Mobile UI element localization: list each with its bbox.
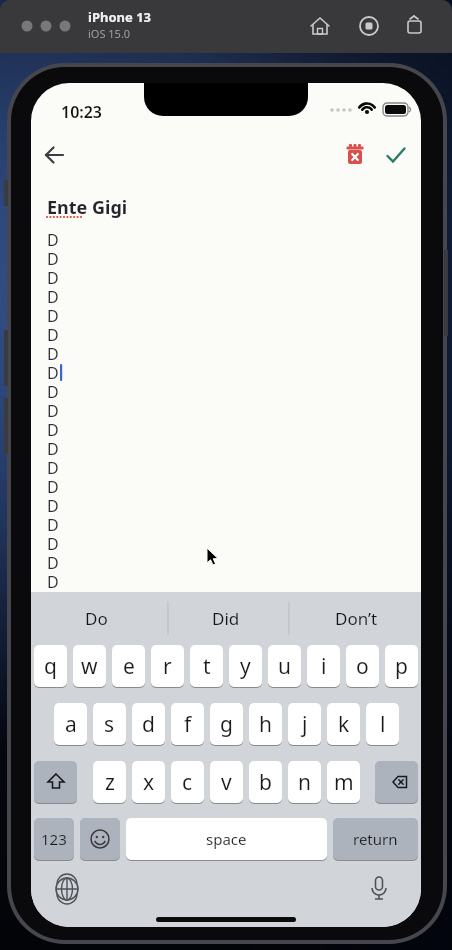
- staticText: j: [302, 710, 308, 739]
- staticText: d: [142, 710, 155, 739]
- button[interactable]: space: [126, 818, 327, 860]
- staticText: y: [240, 652, 251, 681]
- staticText: D: [47, 362, 59, 381]
- button[interactable]: y: [229, 645, 262, 687]
- staticText: D: [47, 438, 59, 457]
- button[interactable]: c: [171, 761, 204, 803]
- staticText: D: [47, 324, 59, 343]
- button[interactable]: h: [249, 703, 282, 745]
- staticText: D: [47, 476, 59, 495]
- staticText: u: [278, 652, 291, 681]
- button[interactable]: a: [54, 703, 87, 745]
- button[interactable]: [384, 143, 408, 167]
- staticText: v: [221, 768, 232, 797]
- staticText: q: [44, 652, 57, 681]
- staticText: z: [105, 768, 115, 797]
- staticText: D: [47, 571, 59, 590]
- staticText: D: [47, 267, 59, 286]
- staticText: g: [220, 710, 233, 739]
- staticText: e: [123, 652, 135, 681]
- button[interactable]: p: [385, 645, 418, 687]
- button[interactable]: m: [327, 761, 360, 803]
- staticText: 10:23: [61, 101, 103, 123]
- button[interactable]: q: [34, 645, 67, 687]
- staticText: r: [163, 652, 172, 681]
- staticText: m: [334, 768, 354, 797]
- staticText: D: [47, 552, 59, 571]
- staticText: a: [65, 710, 77, 739]
- button[interactable]: z: [93, 761, 126, 803]
- button[interactable]: return: [333, 818, 418, 860]
- staticText: n: [298, 768, 311, 797]
- staticText: Ente Gigi: [47, 195, 128, 220]
- staticText: h: [259, 710, 272, 739]
- staticText: Do: [85, 607, 108, 630]
- button[interactable]: v: [210, 761, 243, 803]
- staticText: D: [47, 229, 59, 248]
- button[interactable]: [43, 143, 67, 167]
- staticText: iPhone 13: [88, 8, 151, 26]
- staticText: D: [47, 457, 59, 476]
- staticText: i: [321, 652, 327, 681]
- staticText: Did: [212, 607, 240, 630]
- staticText: D: [47, 286, 59, 305]
- button[interactable]: s: [93, 703, 126, 745]
- button[interactable]: [80, 818, 120, 860]
- staticText: s: [104, 710, 115, 739]
- staticText: x: [143, 768, 155, 797]
- button[interactable]: d: [132, 703, 165, 745]
- staticText: o: [356, 652, 369, 681]
- button[interactable]: [344, 143, 366, 167]
- button[interactable]: u: [268, 645, 301, 687]
- button[interactable]: [34, 761, 77, 803]
- staticText: D: [47, 248, 59, 267]
- staticText: D: [47, 305, 59, 324]
- staticText: D: [47, 400, 59, 419]
- staticText: iOS 15.0: [88, 26, 131, 41]
- staticText: D: [47, 419, 59, 438]
- button[interactable]: k: [327, 703, 360, 745]
- staticText: D: [47, 343, 59, 362]
- button[interactable]: n: [288, 761, 321, 803]
- staticText: D: [47, 381, 59, 400]
- staticText: p: [395, 652, 408, 681]
- staticText: return: [353, 829, 398, 849]
- button[interactable]: j: [288, 703, 321, 745]
- button[interactable]: [375, 761, 418, 803]
- button[interactable]: i: [307, 645, 340, 687]
- staticText: b: [259, 768, 272, 797]
- button[interactable]: 123: [34, 818, 74, 860]
- staticText: Don’t: [335, 607, 378, 630]
- button[interactable]: r: [151, 645, 184, 687]
- button[interactable]: g: [210, 703, 243, 745]
- button[interactable]: Don’t: [291, 592, 421, 644]
- button[interactable]: t: [190, 645, 223, 687]
- button[interactable]: b: [249, 761, 282, 803]
- button[interactable]: Do: [31, 592, 161, 644]
- staticText: D: [47, 514, 59, 533]
- staticText: t: [203, 652, 211, 681]
- button[interactable]: e: [112, 645, 145, 687]
- staticText: D: [47, 495, 59, 514]
- button[interactable]: o: [346, 645, 379, 687]
- button[interactable]: x: [132, 761, 165, 803]
- staticText: k: [338, 710, 350, 739]
- button[interactable]: w: [73, 645, 106, 687]
- button[interactable]: l: [366, 703, 399, 745]
- staticText: w: [81, 652, 98, 681]
- button[interactable]: f: [171, 703, 204, 745]
- staticText: space: [206, 829, 247, 849]
- button[interactable]: Did: [161, 592, 291, 644]
- staticText: c: [182, 768, 193, 797]
- staticText: D: [47, 533, 59, 552]
- staticText: 123: [41, 829, 67, 849]
- staticText: f: [184, 710, 192, 739]
- staticText: l: [380, 710, 386, 739]
